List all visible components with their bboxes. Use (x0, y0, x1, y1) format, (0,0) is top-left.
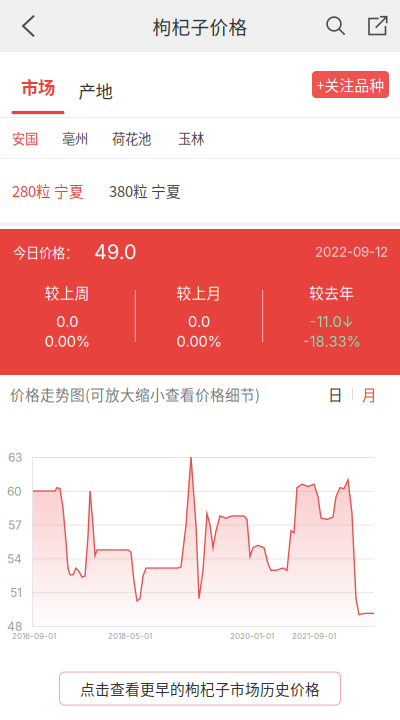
button[interactable]: 月 (362, 383, 377, 405)
staticText: 市场 (21, 74, 55, 99)
button[interactable]: 荷花池 (112, 128, 151, 148)
staticText: +关注品种 (316, 74, 384, 95)
staticText: -11.0↓ (310, 313, 354, 331)
staticText: 较上月 (176, 282, 221, 303)
staticText: 玉林 (178, 128, 204, 148)
button[interactable]: 点击查看更早的枸杞子市场历史价格 (59, 672, 340, 705)
button[interactable]: 日 (328, 383, 343, 405)
staticText: 2016-09-01 (12, 631, 56, 641)
staticText: 安国 (12, 128, 38, 148)
staticText: 枸杞子价格 (152, 12, 247, 39)
staticText: -18.33% (303, 333, 361, 350)
button[interactable]: Share (357, 0, 399, 52)
staticText: 2020-01-01 (230, 631, 274, 641)
button[interactable]: 玉林 (178, 128, 204, 148)
staticText: 48 (7, 619, 22, 634)
staticText: 0.0 (56, 313, 78, 331)
button[interactable]: Search (315, 0, 357, 52)
staticText: 今日价格： (13, 242, 78, 262)
button[interactable]: 380粒 宁夏 (109, 180, 181, 201)
staticText: 57 (8, 518, 22, 532)
staticText: 较上周 (45, 282, 90, 303)
staticText: 0.00% (45, 333, 90, 350)
staticText: 2021-09-01 (292, 631, 336, 641)
staticText: 价格走势图(可放大缩小查看价格细节) (10, 383, 260, 405)
button[interactable]: Back (0, 0, 57, 52)
staticText: 280粒 宁夏 (12, 180, 84, 201)
staticText: 2018-05-01 (108, 631, 152, 641)
staticText: 0.00% (176, 333, 221, 350)
button[interactable]: +关注品种 (312, 71, 389, 98)
button[interactable]: 市场 (3, 52, 73, 117)
button[interactable]: 亳州 (62, 128, 88, 148)
staticText: 2022-09-12 (315, 244, 388, 260)
staticText: 54 (7, 552, 22, 566)
staticText: 点击查看更早的枸杞子市场历史价格 (80, 678, 320, 699)
staticText: 380粒 宁夏 (109, 180, 181, 201)
staticText: 日 (328, 383, 343, 405)
staticText: 亳州 (62, 128, 88, 148)
staticText: 60 (7, 484, 22, 498)
staticText: 较去年 (309, 282, 354, 303)
button[interactable]: 安国 (12, 128, 38, 148)
staticText: 0.0 (188, 313, 210, 331)
button[interactable]: 产地 (73, 52, 118, 117)
staticText: 63 (8, 450, 22, 465)
staticText: 51 (10, 585, 22, 600)
staticText: 月 (362, 383, 377, 405)
staticText: 荷花池 (112, 128, 151, 148)
staticText: 49.0 (94, 240, 137, 264)
staticText: 产地 (78, 78, 112, 103)
button[interactable]: 280粒 宁夏 (12, 180, 84, 201)
